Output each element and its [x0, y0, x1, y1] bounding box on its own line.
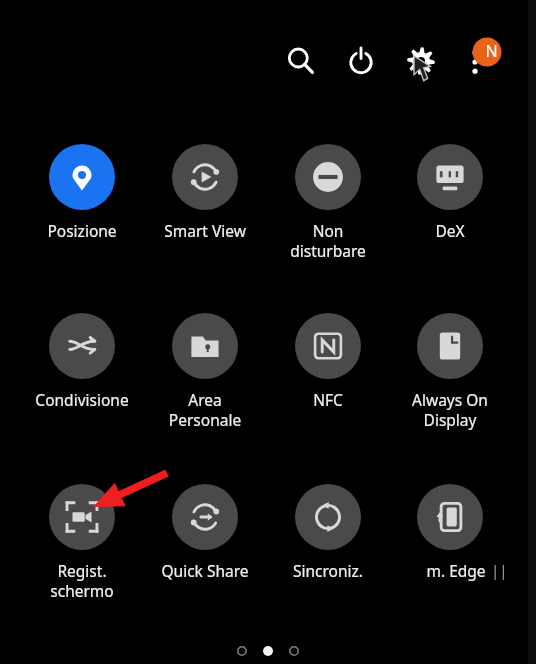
button[interactable]: Posizione: [26, 144, 138, 241]
button[interactable]: NFC: [272, 313, 384, 410]
button[interactable]: Quick Share: [149, 484, 261, 581]
button[interactable]: More options: [454, 36, 504, 86]
button[interactable]: Settings: [396, 36, 446, 86]
staticText: Sincroniz.: [272, 560, 384, 581]
staticText: Smart View: [149, 220, 261, 241]
button[interactable]: Sincroniz.: [272, 484, 384, 581]
button[interactable]: Power off: [336, 36, 386, 86]
button[interactable]: Condivisione: [26, 313, 138, 410]
staticText: Always On Display: [394, 389, 506, 431]
staticText: Area Personale: [149, 389, 261, 431]
button[interactable]: Smart View: [149, 144, 261, 241]
staticText: N: [485, 40, 498, 62]
staticText: Quick Share: [149, 560, 261, 581]
button[interactable]: Regist. schermo: [26, 484, 138, 602]
button[interactable]: Search: [276, 36, 326, 86]
staticText: Posizione: [26, 220, 138, 241]
button[interactable]: m. Edge: [394, 484, 506, 581]
button[interactable]: Always On Display: [394, 313, 506, 431]
staticText: m. Edge: [400, 560, 512, 581]
button[interactable]: Area Personale: [149, 313, 261, 431]
button[interactable]: Non disturbare: [272, 144, 384, 262]
staticText: Condivisione: [26, 389, 138, 410]
staticText: DeX: [394, 220, 506, 241]
staticText: ||: [491, 560, 508, 580]
button[interactable]: DeX: [394, 144, 506, 241]
staticText: NFC: [272, 389, 384, 410]
staticText: Non disturbare: [272, 220, 384, 262]
staticText: Regist. schermo: [26, 560, 138, 602]
